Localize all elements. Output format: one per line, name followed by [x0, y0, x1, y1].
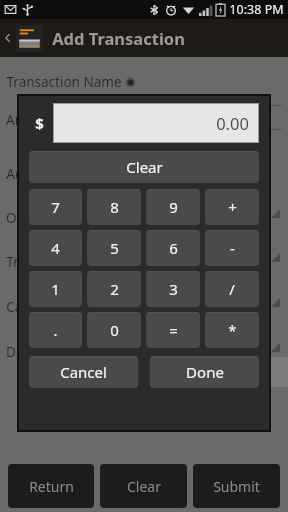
button[interactable]: -	[205, 230, 259, 266]
staticText: Submit	[213, 477, 260, 496]
staticText: Amount	[6, 111, 57, 129]
staticText: Transaction Name	[6, 73, 122, 91]
staticText: 6	[169, 238, 178, 258]
button[interactable]: 0	[87, 312, 141, 348]
button[interactable]: Clear	[29, 151, 259, 183]
button[interactable]: *	[205, 312, 259, 348]
staticText: +	[228, 197, 237, 217]
staticText: 3	[169, 279, 178, 299]
staticText: 8	[110, 197, 119, 217]
staticText: 7	[51, 197, 60, 217]
button[interactable]: Navigate up	[0, 19, 16, 57]
button[interactable]: 0.00	[54, 104, 258, 142]
button[interactable]: 8	[87, 189, 141, 225]
staticText: Clear	[127, 477, 161, 496]
staticText: Return	[29, 477, 74, 496]
staticText: 10:38 PM	[229, 1, 284, 18]
staticText: 0	[110, 320, 119, 340]
staticText: 0.00	[216, 112, 249, 134]
staticText: /	[229, 279, 235, 299]
staticText: 1	[51, 279, 60, 299]
button[interactable]: Return	[8, 464, 94, 508]
button[interactable]: +	[205, 189, 259, 225]
staticText: 5	[110, 238, 119, 258]
button[interactable]: .	[29, 312, 82, 348]
button[interactable]: 4	[29, 230, 82, 266]
button[interactable]: 6	[146, 230, 200, 266]
staticText: Occurs	[6, 209, 50, 227]
button[interactable]: /	[205, 271, 259, 307]
button[interactable]: Cancel	[29, 356, 138, 388]
staticText: Clear	[126, 157, 163, 177]
button[interactable]: =	[146, 312, 200, 348]
button[interactable]: 5	[87, 230, 141, 266]
button[interactable]: 3	[146, 271, 200, 307]
staticText: 2	[110, 279, 119, 299]
button[interactable]: Clear	[100, 464, 187, 508]
staticText: Date	[6, 343, 36, 361]
staticText: 4	[51, 238, 60, 258]
staticText: $	[35, 113, 44, 133]
staticText: Category	[6, 298, 64, 316]
staticText: Account	[6, 165, 58, 183]
button[interactable]: 9	[146, 189, 200, 225]
button[interactable]: 2	[87, 271, 141, 307]
staticText: Done	[186, 362, 224, 382]
button[interactable]: 1	[29, 271, 82, 307]
staticText: Transfer	[6, 253, 59, 271]
staticText: .	[53, 320, 58, 340]
button[interactable]: 7	[29, 189, 82, 225]
staticText: Add Transaction	[52, 27, 185, 49]
button[interactable]: Done	[150, 356, 259, 388]
staticText: -	[230, 238, 235, 258]
staticText: Cancel	[60, 362, 107, 382]
staticText: =	[169, 320, 178, 340]
button[interactable]: Submit	[193, 464, 280, 508]
staticText: 9	[169, 197, 178, 217]
staticText: *	[228, 320, 237, 340]
